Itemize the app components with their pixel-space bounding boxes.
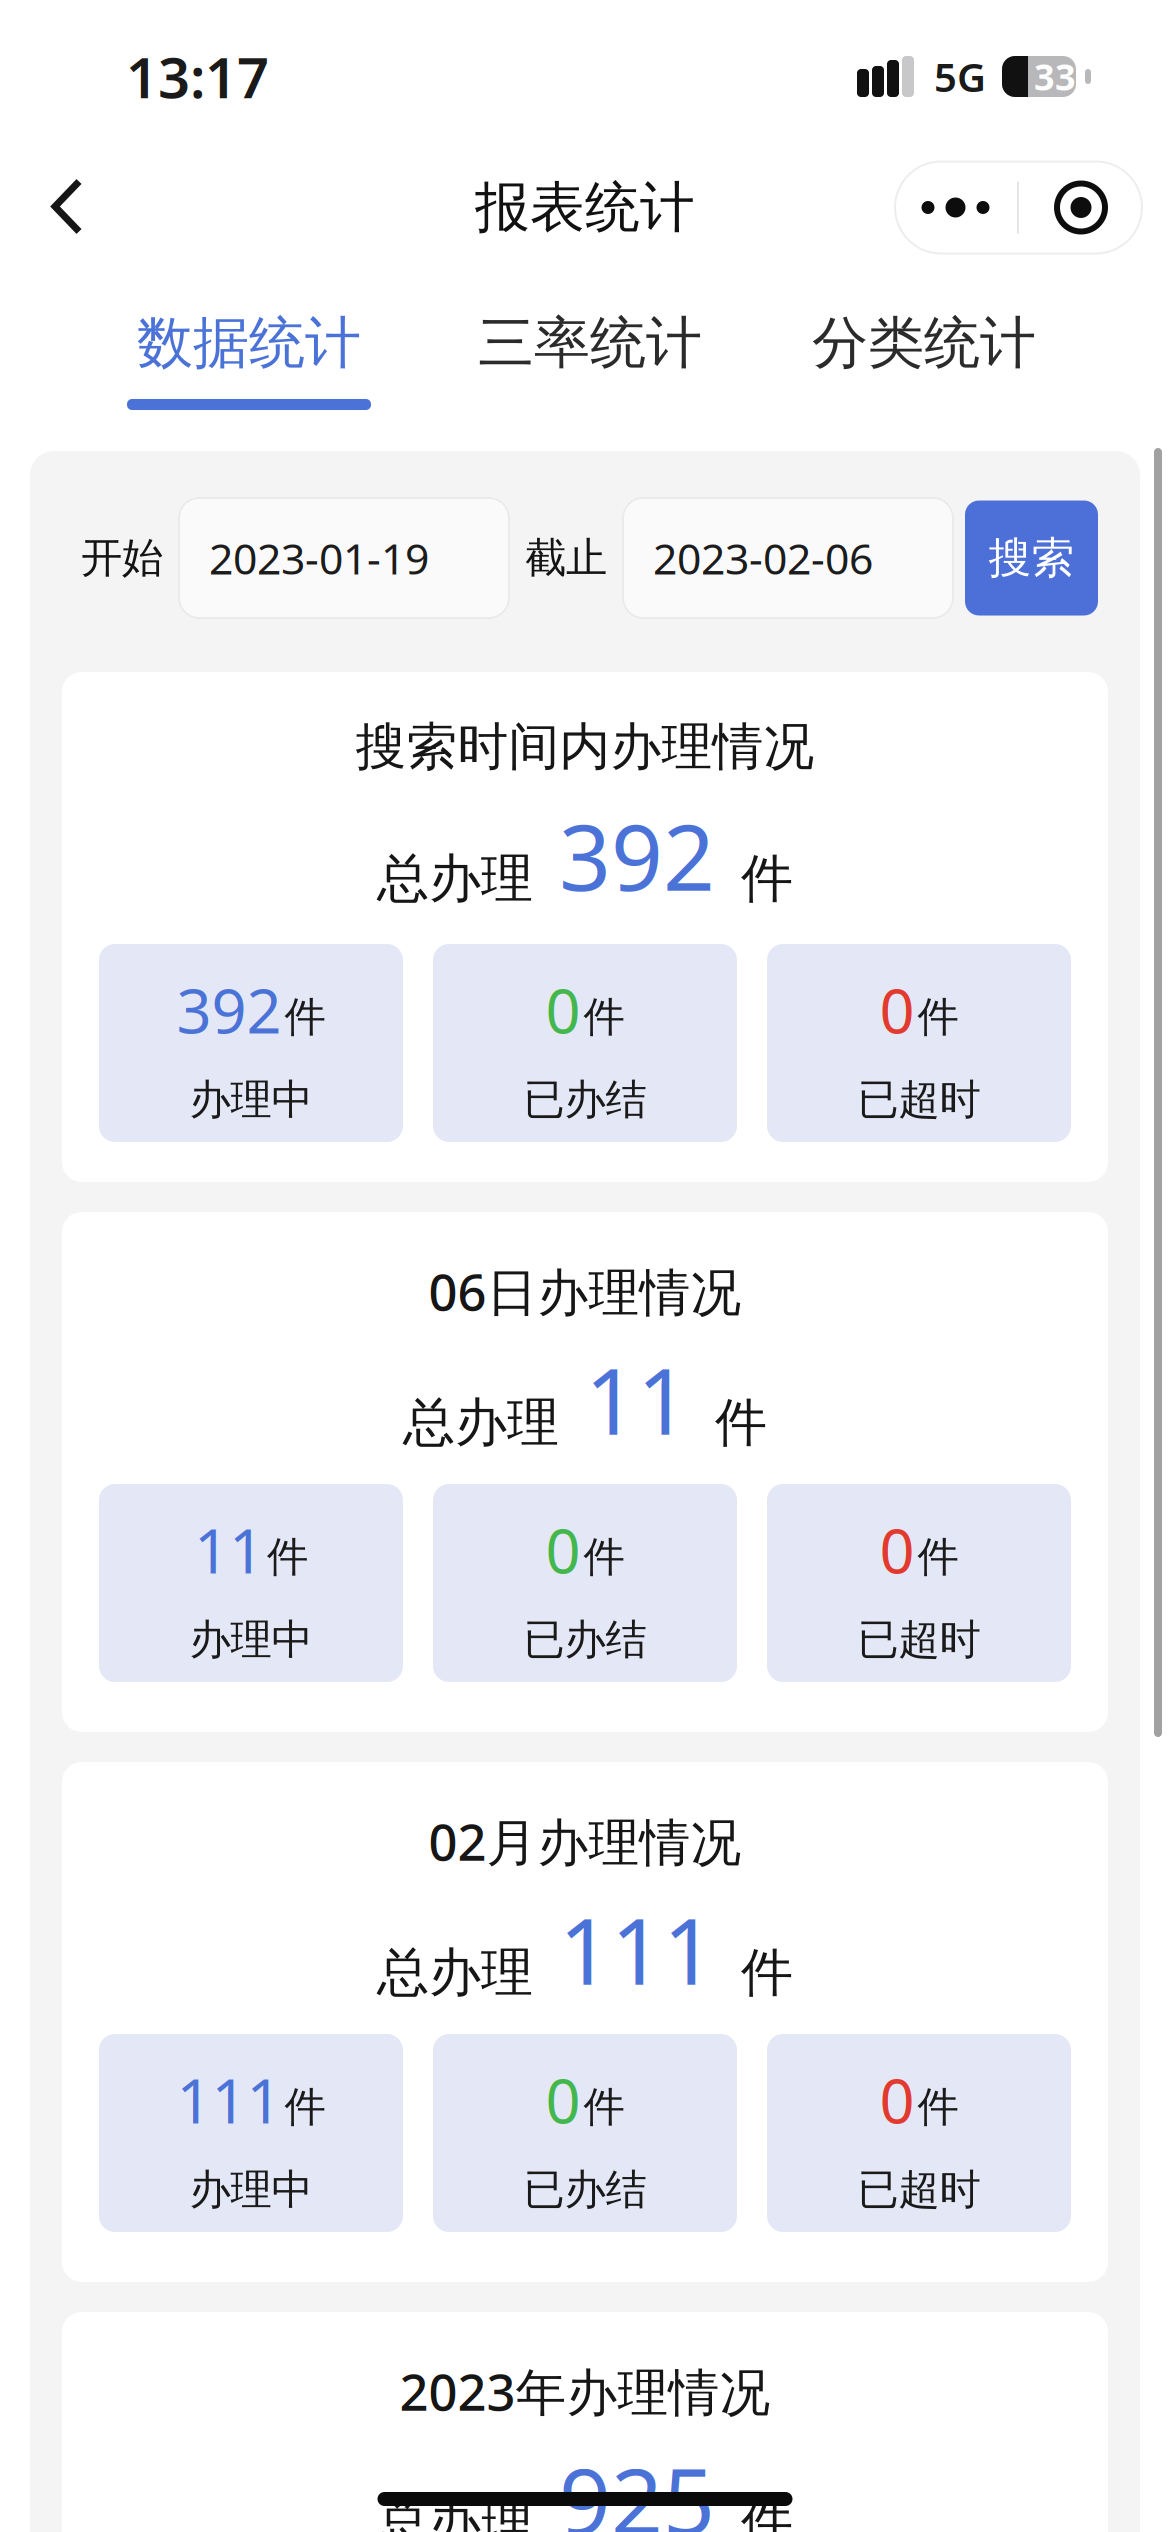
staticText: 02月办理情况 [428, 1807, 741, 1875]
staticText: 2023-01-19 [209, 530, 429, 586]
staticText: 已办结 [523, 2164, 646, 2215]
staticText: 件 [583, 992, 624, 1042]
staticText: 办理中 [189, 1074, 312, 1125]
staticText: 报表统计 [475, 174, 695, 241]
staticText: 2023年办理情况 [399, 2357, 770, 2425]
button[interactable]: 2023-01-19 [178, 497, 510, 619]
staticText: 11 [194, 1509, 264, 1590]
staticText: 已办结 [523, 1074, 646, 1125]
staticText: 总办理 [377, 1941, 533, 2005]
staticText: 截止 [525, 533, 607, 583]
staticText: 已超时 [857, 1074, 980, 1125]
staticText: 办理中 [189, 2164, 312, 2215]
button[interactable]: 2023-02-06 [622, 497, 954, 619]
staticText: 数据统计 [137, 309, 361, 377]
staticText: 件 [917, 1532, 958, 1582]
staticText: 已超时 [857, 1614, 980, 1665]
staticText: 5G [934, 50, 986, 103]
button[interactable]: 三率统计 [371, 275, 809, 411]
staticText: 三率统计 [478, 309, 702, 377]
staticText: 0 [879, 1509, 914, 1590]
staticText: 分类统计 [812, 309, 1036, 377]
button[interactable]: Back [0, 181, 82, 233]
staticText: 件 [715, 1391, 767, 1455]
staticText: 件 [583, 2082, 624, 2132]
button[interactable]: Exit [1019, 160, 1143, 254]
staticText: 392 [176, 969, 281, 1050]
staticText: 件 [284, 2082, 325, 2132]
staticText: 件 [284, 992, 325, 1042]
staticText: 件 [267, 1532, 308, 1582]
staticText: 已办结 [523, 1614, 646, 1665]
button[interactable]: 搜索 [965, 500, 1098, 615]
staticText: 件 [741, 2491, 793, 2532]
staticText: 件 [741, 1941, 793, 2005]
staticText: 总办理 [403, 1391, 559, 1455]
staticText: 0 [879, 2059, 914, 2140]
staticText: 办理中 [189, 1614, 312, 1665]
staticText: 件 [741, 847, 793, 911]
staticText: 件 [583, 1532, 624, 1582]
staticText: 总办理 [377, 2491, 533, 2532]
button[interactable]: 数据统计 [127, 275, 371, 411]
staticText: 392 [559, 795, 715, 916]
staticText: 925 [559, 2439, 715, 2532]
staticText: 0 [545, 2059, 580, 2140]
staticText: 11 [585, 1339, 689, 1460]
button[interactable]: More [894, 160, 1017, 254]
staticText: 总办理 [377, 847, 533, 911]
staticText: 2023-02-06 [653, 530, 873, 586]
staticText: 件 [917, 992, 958, 1042]
staticText: 搜索 [988, 532, 1074, 584]
button[interactable]: 分类统计 [809, 275, 1039, 411]
staticText: 06日办理情况 [428, 1257, 741, 1325]
staticText: 13:17 [126, 39, 269, 114]
staticText: 开始 [81, 533, 163, 583]
staticText: 0 [879, 969, 914, 1050]
staticText: 111 [176, 2059, 281, 2140]
staticText: 33 [1034, 53, 1076, 100]
staticText: 已超时 [857, 2164, 980, 2215]
staticText: 搜索时间内办理情况 [355, 716, 814, 778]
staticText: 0 [545, 1509, 580, 1590]
staticText: 件 [917, 2082, 958, 2132]
staticText: 0 [545, 969, 580, 1050]
staticText: 111 [559, 1889, 715, 2010]
